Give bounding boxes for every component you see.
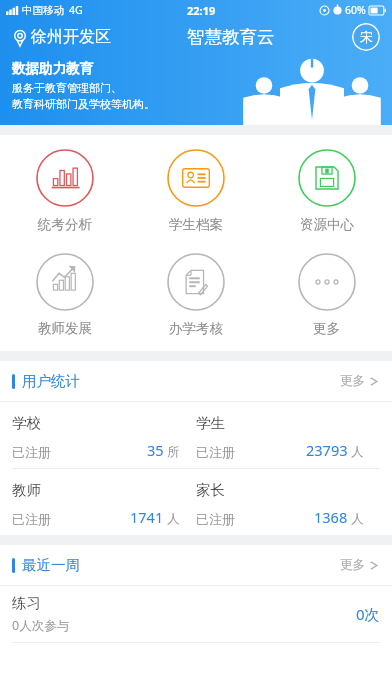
button[interactable]: 教师 [12,469,196,535]
staticText: 60% [345,3,366,17]
staticText: 办学考核 [169,320,223,337]
staticText: 35 [147,440,164,460]
staticText: 最近一周 [22,556,80,574]
button[interactable]: 教师发展 [0,251,130,339]
button[interactable]: 徐州开发区 [12,25,111,49]
staticText: 人 [351,511,364,527]
staticText: 已注册 [196,511,235,527]
staticText: 用户统计 [22,372,80,390]
staticText: 智慧教育云 [187,26,275,48]
button[interactable]: 统考分析 [0,147,130,235]
button[interactable]: 更多 [338,553,380,577]
staticText: 4G [69,3,83,17]
button[interactable]: 学生 [196,402,380,468]
staticText: 教师发展 [38,320,92,337]
staticText: 0次 [356,604,380,624]
staticText: 徐州开发区 [31,27,111,47]
staticText: 人 [167,511,180,527]
button[interactable]: 学生档案 [130,147,261,235]
staticText: 更多 [340,557,365,573]
staticText: 23793 [306,440,348,460]
staticText: 中国移动 [22,4,64,17]
staticText: 1741 [130,507,164,527]
staticText: 已注册 [12,511,51,527]
button[interactable]: 办学考核 [130,251,261,339]
staticText: 人 [351,444,364,460]
staticText: 已注册 [12,444,51,460]
button[interactable]: 家长 [196,469,380,535]
staticText: 学生档案 [169,216,223,233]
button[interactable]: 练习 [0,586,392,642]
staticText: 统考分析 [38,216,92,233]
staticText: 更多 [313,320,340,337]
button[interactable]: 学校 [12,402,196,468]
staticText: 宋 [360,29,373,45]
staticText: 学校 [12,414,41,432]
staticText: 练习 [12,594,41,612]
staticText: 22:19 [187,3,216,18]
button[interactable]: 资源中心 [261,147,392,235]
button[interactable]: 更多 [261,251,392,339]
staticText: 0人次参与 [12,617,70,634]
staticText: 资源中心 [300,216,354,233]
staticText: 所 [167,444,180,460]
button[interactable]: Profile [352,23,380,51]
staticText: 教育科研部门及学校等机构。 [12,97,155,111]
staticText: 更多 [340,373,365,389]
staticText: 服务于教育管理部门、 [12,81,122,95]
button[interactable]: 更多 [338,369,380,393]
staticText: 数据助力教育 [12,60,93,77]
staticText: 1368 [314,507,348,527]
staticText: 已注册 [196,444,235,460]
staticText: 教师 [12,481,41,499]
staticText: 学生 [196,414,225,432]
staticText: 家长 [196,481,225,499]
